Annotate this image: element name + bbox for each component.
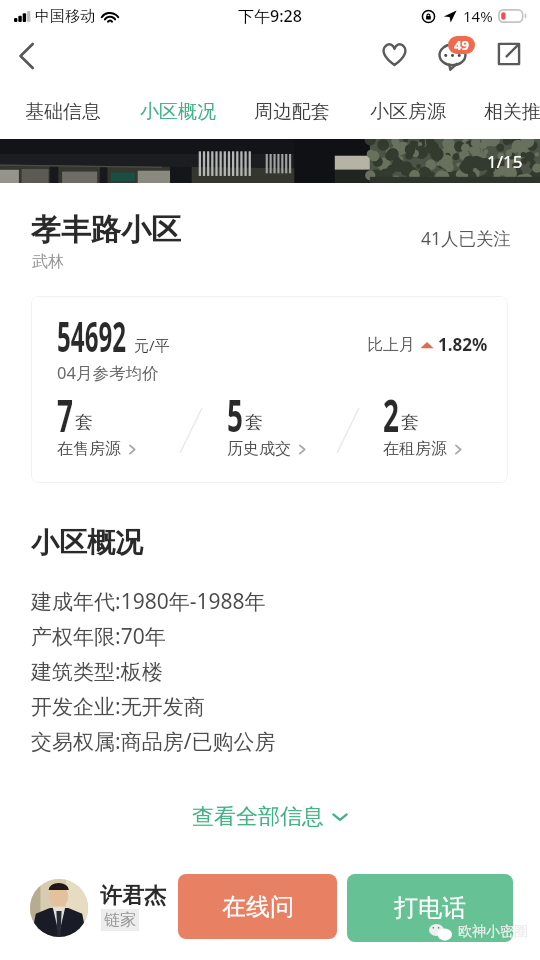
button[interactable]: Agent avatar (30, 879, 88, 937)
staticText: 54692 (57, 308, 127, 364)
staticText: 49 (454, 36, 469, 54)
button[interactable]: 查看全部信息 (0, 800, 540, 834)
staticText: 1/15 (487, 150, 523, 173)
staticText: 链家 (104, 910, 136, 930)
staticText: 04月参考均价 (57, 361, 159, 384)
staticText: 基础信息 (25, 100, 101, 124)
staticText: 7 (57, 384, 73, 445)
button[interactable]: 基础信息 (13, 92, 113, 132)
staticText: 1.82% (438, 333, 488, 356)
button[interactable]: 历史成交 (227, 439, 308, 459)
staticText: 14% (463, 6, 493, 26)
staticText: 5 (227, 384, 243, 445)
staticText: 41人已关注 (421, 226, 512, 250)
staticText: 打电话 (394, 893, 466, 923)
staticText: 建筑类型:板楼 (31, 657, 163, 686)
staticText: 欧神小密圈 (458, 923, 528, 941)
staticText: 产权年限:70年 (31, 622, 166, 651)
staticText: 周边配套 (254, 100, 330, 124)
staticText: 2 (383, 384, 399, 445)
staticText: 在线问 (222, 892, 294, 922)
staticText: 在租房源 (383, 439, 447, 459)
staticText: 建成年代:1980年-1988年 (31, 587, 266, 616)
button[interactable]: 在售房源 (57, 439, 138, 459)
staticText: 相关推荐 (484, 100, 540, 124)
button[interactable]: 在线问 (178, 874, 337, 939)
staticText: 元/平 (134, 335, 170, 355)
staticText: 套 (75, 411, 93, 434)
staticText: 开发企业:无开发商 (31, 692, 205, 721)
staticText: 历史成交 (227, 439, 291, 459)
staticText: 套 (401, 411, 419, 434)
staticText: 比上月 (367, 335, 415, 355)
button[interactable]: Comments (429, 32, 481, 84)
staticText: 孝丰路小区 (31, 211, 181, 249)
staticText: 小区房源 (370, 100, 446, 124)
button[interactable]: 周边配套 (242, 92, 342, 132)
button[interactable]: 在租房源 (383, 439, 464, 459)
staticText: 小区概况 (140, 100, 216, 124)
staticText: 交易权属:商品房/已购公房 (31, 727, 276, 756)
staticText: 查看全部信息 (192, 803, 324, 831)
button[interactable]: 小区房源 (358, 92, 458, 132)
staticText: 小区概况 (31, 525, 143, 560)
button[interactable]: 打电话 (347, 874, 513, 942)
button[interactable]: Favorite (372, 32, 416, 76)
button[interactable]: Back (4, 34, 48, 78)
staticText: 下午9:28 (238, 5, 302, 27)
staticText: 套 (245, 411, 263, 434)
button[interactable]: Share (487, 32, 531, 76)
button[interactable]: 小区概况 (128, 92, 228, 132)
staticText: 武林 (32, 252, 64, 272)
staticText: 中国移动 (35, 7, 95, 26)
staticText: 在售房源 (57, 439, 121, 459)
staticText: 许君杰 (100, 882, 166, 910)
button[interactable]: 相关推荐 (472, 92, 540, 132)
